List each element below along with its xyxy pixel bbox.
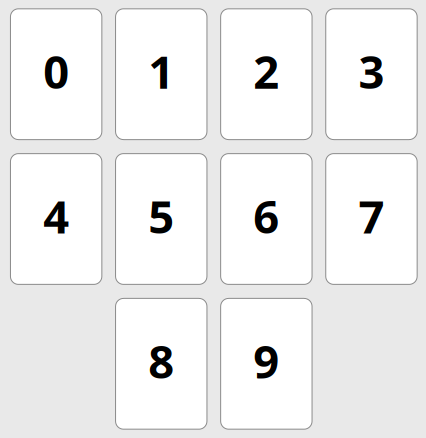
button[interactable]: 0 (10, 9, 102, 140)
staticText: 0 (43, 41, 69, 101)
staticText: 8 (148, 331, 174, 391)
button[interactable]: 6 (221, 154, 312, 284)
staticText: 1 (148, 41, 174, 101)
staticText: 3 (358, 41, 384, 101)
staticText: 4 (43, 186, 69, 246)
button[interactable]: 3 (326, 9, 417, 140)
button[interactable]: 1 (115, 9, 207, 140)
staticText: 5 (148, 186, 174, 246)
staticText: 7 (358, 186, 384, 246)
button[interactable]: 7 (326, 154, 417, 284)
staticText: 6 (253, 186, 279, 246)
button[interactable]: 5 (115, 154, 207, 284)
staticText: 2 (253, 41, 279, 101)
button[interactable]: 2 (221, 9, 312, 140)
button[interactable]: 8 (115, 298, 207, 429)
button[interactable]: 4 (10, 154, 102, 284)
button[interactable]: 9 (221, 298, 312, 429)
staticText: 9 (253, 331, 279, 391)
